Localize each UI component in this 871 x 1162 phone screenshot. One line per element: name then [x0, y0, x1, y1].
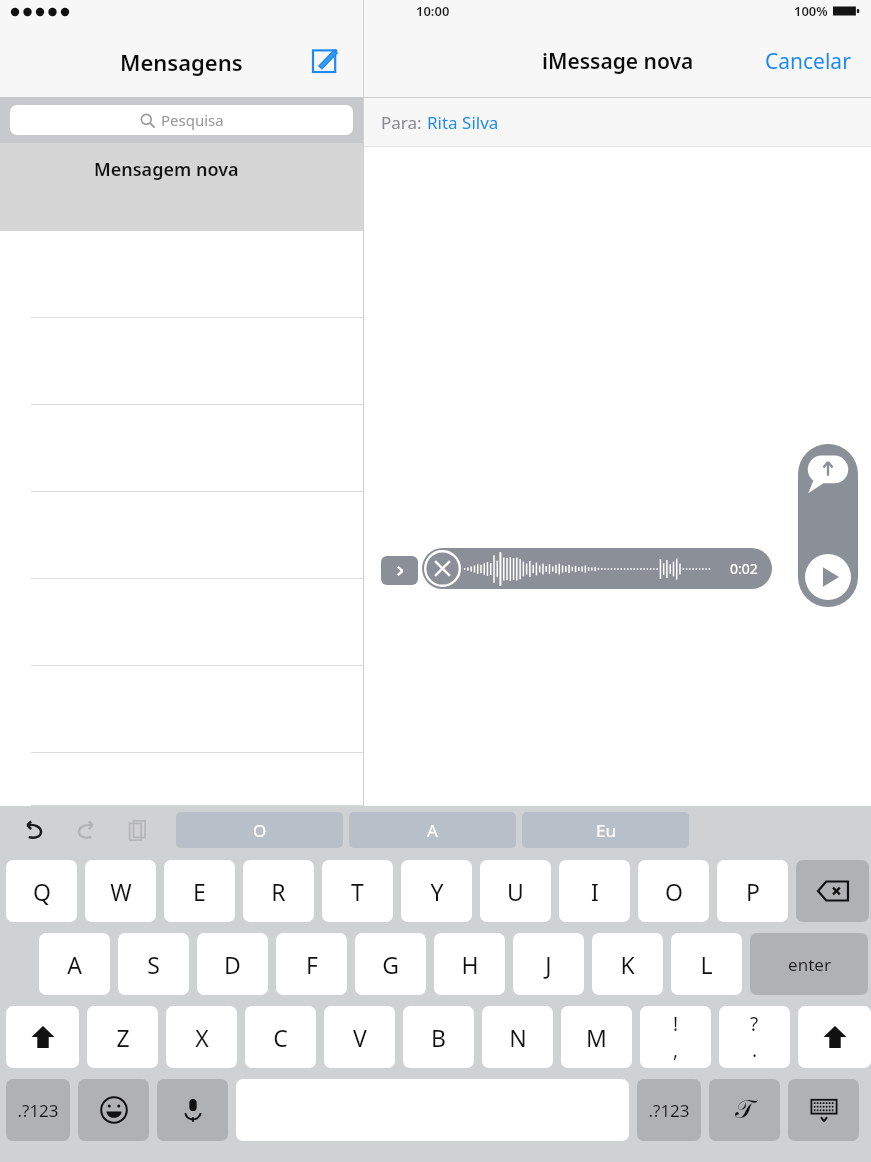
button[interactable]: Shift: [798, 1006, 871, 1068]
button[interactable]: M: [561, 1006, 632, 1068]
button[interactable]: U: [480, 860, 551, 922]
staticText: enter: [788, 953, 831, 976]
button[interactable]: L: [671, 933, 742, 995]
button[interactable]: Expand options: [381, 556, 418, 585]
button[interactable]: Para:: [364, 98, 871, 146]
staticText: Cancelar: [765, 47, 851, 76]
button[interactable]: C: [245, 1006, 316, 1068]
button[interactable]: Z: [87, 1006, 158, 1068]
button[interactable]: Shift: [6, 1006, 79, 1068]
button[interactable]: [0, 753, 363, 806]
button[interactable]: Q: [6, 860, 77, 922]
button[interactable]: D: [197, 933, 268, 995]
button[interactable]: Emoji: [78, 1079, 149, 1141]
staticText: R: [271, 876, 286, 907]
staticText: ,: [673, 1037, 679, 1063]
staticText: A: [67, 949, 82, 980]
button[interactable]: Paste: [118, 810, 158, 850]
button[interactable]: N: [482, 1006, 553, 1068]
button[interactable]: I: [559, 860, 630, 922]
staticText: A: [427, 819, 438, 842]
button[interactable]: S: [118, 933, 189, 995]
staticText: 0:02: [730, 559, 758, 578]
staticText: .?123: [648, 1099, 690, 1122]
button[interactable]: K: [592, 933, 663, 995]
button[interactable]: Pesquisa: [10, 105, 353, 135]
staticText: U: [507, 876, 524, 907]
staticText: W: [110, 876, 132, 907]
staticText: Rita Silva: [427, 111, 499, 134]
button[interactable]: Redo: [66, 810, 106, 850]
staticText: F: [306, 949, 318, 980]
button[interactable]: P: [717, 860, 788, 922]
button[interactable]: J: [513, 933, 584, 995]
staticText: .?123: [17, 1099, 59, 1122]
button[interactable]: Backspace: [796, 860, 869, 922]
button[interactable]: Play audio message: [802, 551, 854, 603]
button[interactable]: .?123: [6, 1079, 70, 1141]
staticText: S: [147, 949, 160, 980]
button[interactable]: V: [324, 1006, 395, 1068]
staticText: J: [545, 949, 552, 980]
staticText: Q: [33, 876, 51, 907]
button[interactable]: [0, 666, 363, 753]
staticText: 10:00: [416, 2, 450, 20]
button[interactable]: O: [638, 860, 709, 922]
button[interactable]: [0, 231, 363, 318]
button[interactable]: Send audio message: [802, 448, 854, 500]
staticText: I: [591, 876, 599, 907]
staticText: .: [752, 1037, 758, 1063]
button[interactable]: H: [434, 933, 505, 995]
staticText: iMessage nova: [542, 47, 694, 76]
button[interactable]: F: [276, 933, 347, 995]
button[interactable]: Compose new message: [303, 38, 347, 82]
staticText: T: [351, 876, 364, 907]
button[interactable]: R: [243, 860, 314, 922]
button[interactable]: Mensagem nova: [0, 143, 363, 231]
button[interactable]: A: [39, 933, 110, 995]
button[interactable]: E: [164, 860, 235, 922]
staticText: Mensagens: [120, 47, 243, 77]
button[interactable]: ?: [719, 1006, 790, 1068]
button[interactable]: !: [640, 1006, 711, 1068]
staticText: Para:: [381, 111, 427, 134]
button[interactable]: A: [349, 812, 516, 848]
button[interactable]: O: [176, 812, 343, 848]
staticText: 𝒯: [735, 1097, 755, 1123]
button[interactable]: [0, 318, 363, 405]
button[interactable]: G: [355, 933, 426, 995]
button[interactable]: Cancelar: [761, 43, 855, 80]
staticText: 100%: [794, 2, 828, 20]
button[interactable]: Delete audio message: [422, 548, 772, 589]
button[interactable]: Dictation: [157, 1079, 228, 1141]
button[interactable]: Y: [401, 860, 472, 922]
staticText: Z: [116, 1022, 130, 1053]
staticText: V: [353, 1022, 367, 1053]
button[interactable]: Delete audio message: [424, 550, 461, 587]
staticText: B: [431, 1022, 446, 1053]
button[interactable]: W: [85, 860, 156, 922]
button[interactable]: .?123: [637, 1079, 701, 1141]
button[interactable]: Handwriting: [709, 1079, 780, 1141]
button[interactable]: T: [322, 860, 393, 922]
button[interactable]: Undo: [14, 810, 54, 850]
button[interactable]: Hide keyboard: [788, 1079, 859, 1141]
staticText: H: [461, 949, 479, 980]
button[interactable]: Eu: [522, 812, 689, 848]
staticText: Pesquisa: [161, 110, 224, 130]
staticText: !: [673, 1011, 679, 1037]
staticText: M: [586, 1022, 607, 1053]
button[interactable]: enter: [750, 933, 868, 995]
button[interactable]: [0, 405, 363, 492]
staticText: D: [224, 949, 241, 980]
button[interactable]: [0, 579, 363, 666]
button[interactable]: B: [403, 1006, 474, 1068]
button[interactable]: [0, 492, 363, 579]
button[interactable]: X: [166, 1006, 237, 1068]
staticText: G: [382, 949, 399, 980]
staticText: P: [746, 876, 760, 907]
staticText: X: [195, 1022, 209, 1053]
staticText: N: [509, 1022, 527, 1053]
staticText: Y: [430, 876, 444, 907]
